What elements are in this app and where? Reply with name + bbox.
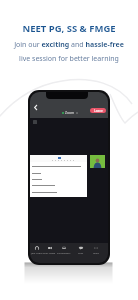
staticText: Participants <box>57 251 71 254</box>
staticText: Chat <box>78 251 84 254</box>
button[interactable]: Leave <box>90 108 106 113</box>
staticText: live session for better learning <box>0 54 138 64</box>
staticText: Start Video <box>43 251 56 254</box>
staticText: Join our exciting and hassle-free <box>0 40 138 50</box>
staticText: Zoom <box>65 110 75 115</box>
staticText: Join Audio <box>31 251 43 254</box>
button[interactable]: Zoom <box>62 110 78 115</box>
button[interactable]: Participants <box>56 246 72 258</box>
button[interactable]: Start Video <box>41 246 57 258</box>
button[interactable]: Back <box>31 103 40 112</box>
button[interactable]: More <box>88 246 104 258</box>
staticText: NEET PG, SS & FMGE <box>0 22 138 35</box>
button[interactable]: Chat <box>73 246 89 258</box>
button[interactable]: Join Audio <box>30 246 45 258</box>
staticText: More <box>93 251 99 254</box>
staticText: Leave <box>94 109 103 113</box>
